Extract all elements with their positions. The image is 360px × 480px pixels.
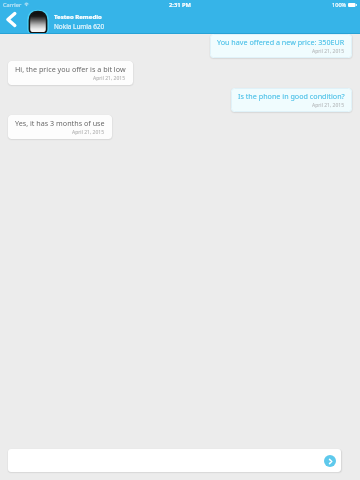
staticText: Hi, the price you offer is a bit low bbox=[15, 64, 126, 74]
button[interactable]: Back bbox=[0, 9, 28, 34]
staticText: You have offered a new price: 350EUR bbox=[217, 37, 345, 47]
staticText: April 21, 2015 bbox=[312, 102, 345, 109]
staticText: 100% bbox=[332, 1, 347, 9]
staticText: Yes, it has 3 months of use bbox=[15, 118, 105, 128]
staticText: Carrier bbox=[3, 1, 22, 9]
button[interactable]: Send bbox=[324, 455, 336, 467]
button[interactable]: Send bbox=[8, 449, 341, 472]
staticText: Is the phone in good condition? bbox=[238, 91, 345, 101]
staticText: Nokia Lumia 620 bbox=[54, 22, 105, 31]
staticText: April 21, 2015 bbox=[72, 129, 105, 136]
staticText: April 21, 2015 bbox=[312, 48, 345, 55]
staticText: Testeo Remedio bbox=[54, 13, 102, 21]
button[interactable]: You have offered a new price: 350EUR bbox=[210, 34, 352, 58]
staticText: 2:31 PM bbox=[169, 1, 192, 9]
button[interactable]: Yes, it has 3 months of use bbox=[8, 115, 112, 139]
staticText: April 21, 2015 bbox=[93, 75, 126, 82]
button[interactable]: Hi, the price you offer is a bit low bbox=[8, 61, 133, 85]
button[interactable]: Is the phone in good condition? bbox=[231, 88, 352, 112]
